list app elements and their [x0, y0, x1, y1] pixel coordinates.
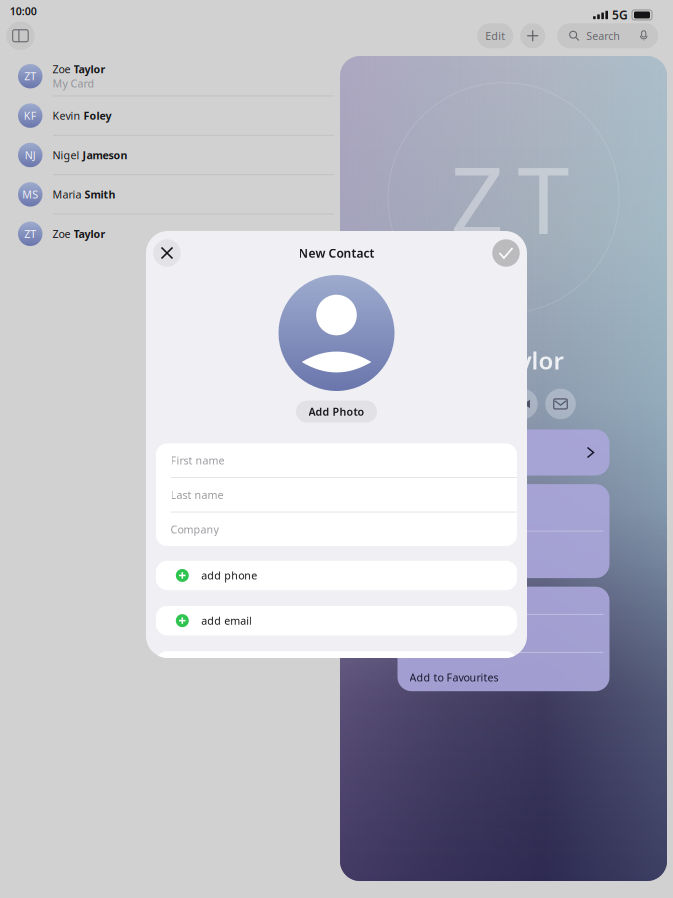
button[interactable]: add url [156, 651, 517, 680]
staticText: My Card [52, 76, 94, 90]
button[interactable]: Add Photo [397, 429, 609, 475]
staticText: MS [22, 187, 38, 201]
button[interactable]: Cancel [153, 239, 181, 267]
staticText: Kevin [52, 108, 83, 123]
button[interactable]: FaceTime [507, 389, 538, 419]
button[interactable]: ZT [0, 57, 340, 95]
button[interactable]: Add to Favourites [397, 661, 609, 694]
button[interactable]: ZT [0, 215, 340, 253]
staticText: Add to Favourites [409, 670, 498, 685]
staticText: Jameson [82, 148, 127, 162]
staticText: Zoe Taylor [443, 344, 563, 376]
button[interactable]: Add Contact [513, 23, 545, 48]
button[interactable]: KF [0, 96, 340, 135]
staticText: Edit [485, 29, 505, 43]
staticText: Zoe [52, 62, 73, 76]
button[interactable]: Mail [545, 389, 576, 419]
button[interactable]: NJ [0, 136, 340, 174]
staticText: Zoe [52, 227, 73, 241]
button[interactable]: Search [545, 23, 658, 48]
staticText: ZT [24, 227, 36, 241]
button[interactable]: Edit [477, 23, 513, 48]
staticText: Smith [84, 187, 115, 201]
button[interactable]: Done [492, 239, 520, 267]
staticText: NJ [25, 148, 36, 162]
button[interactable]: add email [156, 606, 517, 635]
staticText: 10:00 [10, 4, 37, 18]
staticText: 5G [612, 7, 628, 23]
staticText: Taylor [73, 227, 105, 241]
staticText: add phone [201, 568, 257, 583]
button[interactable]: Toggle Sidebar [6, 21, 35, 50]
staticText: Nigel [52, 148, 82, 162]
staticText: First name [171, 453, 225, 467]
staticText: ZT [24, 69, 36, 83]
staticText: Add Photo [308, 404, 364, 419]
staticText: Maria [52, 187, 84, 201]
staticText: Search [586, 29, 620, 43]
staticText: Company [171, 522, 219, 536]
staticText: ZT [450, 136, 569, 260]
staticText: KF [24, 108, 37, 123]
button[interactable]: Add Photo [296, 401, 377, 423]
staticText: New Contact [298, 245, 374, 261]
staticText: add email [201, 614, 252, 628]
staticText: Last name [171, 488, 224, 502]
button[interactable]: MS [0, 175, 340, 214]
staticText: Taylor [73, 62, 105, 76]
staticText: Foley [83, 108, 111, 123]
button[interactable]: add phone [156, 561, 517, 590]
